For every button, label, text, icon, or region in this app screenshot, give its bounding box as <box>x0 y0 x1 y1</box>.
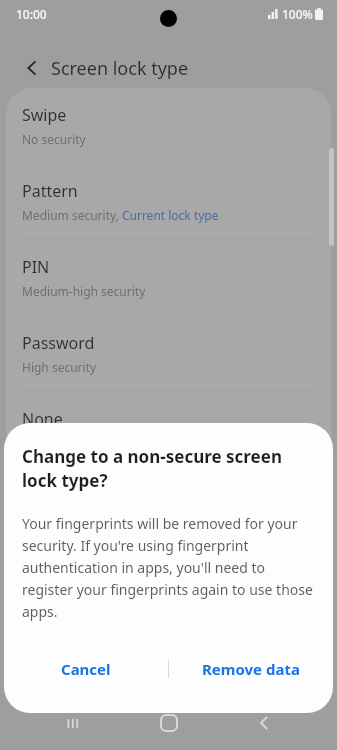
button[interactable]: None <box>6 392 331 446</box>
staticText: Pattern <box>22 180 78 202</box>
staticText: Medium security, Current lock type <box>22 207 219 223</box>
button[interactable]: Remove data <box>169 647 333 691</box>
button[interactable]: Back <box>244 703 284 743</box>
button[interactable]: Back <box>12 48 52 88</box>
staticText: 100% <box>282 6 313 22</box>
button[interactable]: Password <box>6 316 331 391</box>
staticText: Medium-high security <box>22 283 146 299</box>
staticText: Remove data <box>202 659 300 679</box>
button[interactable]: PIN <box>6 240 331 315</box>
staticText: Change to a non-secure screen lock type? <box>22 445 282 492</box>
button[interactable]: Cancel <box>4 647 168 691</box>
staticText: Screen lock type <box>51 56 189 81</box>
staticText: Cancel <box>61 659 111 679</box>
staticText: Your fingerprints will be removed for yo… <box>22 514 319 621</box>
staticText: Password <box>22 332 95 354</box>
button[interactable]: Recents <box>53 703 93 743</box>
staticText: Swipe <box>22 104 67 126</box>
button[interactable]: Home <box>148 702 190 744</box>
button[interactable]: Pattern <box>6 164 331 239</box>
staticText: No security <box>22 131 86 147</box>
staticText: High security <box>22 359 97 375</box>
staticText: 10:00 <box>16 6 47 22</box>
button[interactable]: Swipe <box>6 88 331 163</box>
staticText: None <box>22 408 63 430</box>
staticText: PIN <box>22 256 50 278</box>
